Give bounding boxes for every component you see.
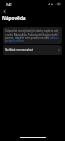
staticText: 9:41: [6, 3, 12, 7]
staticText: Nápověda: [2, 15, 26, 21]
button[interactable]: Back: [1, 8, 7, 14]
button[interactable]: Nahlásit nesrovnalost: [3, 45, 62, 55]
staticText: Nahlásit nesrovnalost: [5, 48, 33, 52]
button[interactable]: Odpovědi na nejčastější otázky najdete z…: [5, 29, 59, 42]
